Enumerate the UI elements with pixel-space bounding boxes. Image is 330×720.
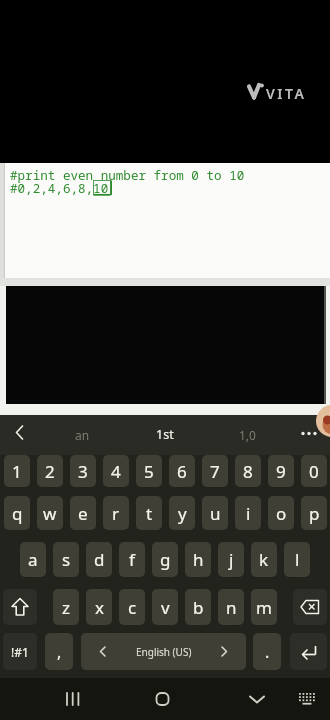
button[interactable]: !#1 — [3, 633, 37, 670]
button[interactable]: m — [251, 589, 277, 625]
staticText: 0 — [309, 460, 319, 483]
staticText: p — [309, 502, 320, 525]
staticText: 1 — [12, 460, 22, 483]
button[interactable]: s — [53, 542, 79, 577]
button[interactable]: . — [253, 633, 281, 670]
button[interactable]: y — [169, 496, 195, 530]
button[interactable]: i — [235, 496, 261, 530]
staticText: d — [94, 548, 105, 571]
staticText: 2 — [45, 460, 55, 483]
staticText: c — [128, 596, 137, 619]
button[interactable]: o — [268, 496, 294, 530]
button[interactable]: w — [37, 496, 63, 530]
staticText: 3 — [78, 460, 88, 483]
button[interactable]: d — [86, 542, 112, 577]
button[interactable]: g — [152, 542, 178, 577]
button[interactable]: 6 — [169, 455, 195, 487]
button[interactable]: 5 — [136, 455, 162, 487]
button[interactable] — [247, 690, 267, 708]
button[interactable]: English (US) — [81, 633, 246, 670]
staticText: #print even number from 0 to 10 — [10, 167, 245, 184]
button[interactable] — [293, 589, 327, 625]
button[interactable]: 4 — [103, 455, 129, 487]
button[interactable]: q — [4, 496, 30, 530]
button[interactable]: z — [53, 589, 79, 625]
staticText: z — [62, 596, 70, 619]
staticText: w — [43, 502, 57, 525]
button[interactable]: t — [136, 496, 162, 530]
staticText: 4 — [111, 460, 121, 483]
staticText: f — [129, 548, 135, 571]
staticText: n — [226, 596, 237, 619]
staticText: !#1 — [11, 644, 29, 660]
staticText: e — [78, 502, 88, 525]
staticText: 9 — [276, 460, 286, 483]
staticText: k — [259, 548, 269, 571]
button[interactable]: 7 — [202, 455, 228, 487]
staticText: 7 — [210, 460, 220, 483]
staticText: i — [246, 502, 251, 525]
staticText: l — [295, 548, 300, 571]
button[interactable]: 2 — [37, 455, 63, 487]
button[interactable]: e — [70, 496, 96, 530]
staticText: 8 — [243, 460, 253, 483]
staticText: q — [12, 502, 23, 525]
button[interactable]: x — [86, 589, 112, 625]
staticText: r — [112, 502, 120, 525]
staticText: y — [178, 502, 187, 525]
staticText: h — [193, 548, 204, 571]
staticText: g — [160, 548, 171, 571]
button[interactable]: a — [20, 542, 46, 577]
button[interactable] — [298, 423, 320, 445]
button[interactable]: k — [251, 542, 277, 577]
button[interactable]: 8 — [235, 455, 261, 487]
staticText: j — [229, 548, 234, 571]
staticText: b — [193, 596, 204, 619]
button[interactable]: , — [45, 633, 73, 670]
button[interactable]: an — [55, 415, 110, 454]
button[interactable] — [64, 690, 82, 708]
button[interactable]: p — [301, 496, 327, 530]
button[interactable]: v — [152, 589, 178, 625]
staticText: x — [95, 596, 104, 619]
staticText: VITA — [266, 84, 307, 103]
staticText: an — [75, 427, 90, 443]
button[interactable] — [12, 422, 28, 448]
button[interactable]: f — [119, 542, 145, 577]
button[interactable]: b — [185, 589, 211, 625]
staticText: , — [57, 641, 62, 663]
staticText: v — [161, 596, 170, 619]
button[interactable]: 1,0 — [220, 415, 275, 454]
button[interactable]: j — [218, 542, 244, 577]
staticText: o — [276, 502, 287, 525]
button[interactable] — [297, 690, 317, 708]
staticText: t — [146, 502, 153, 525]
button[interactable]: 0 — [301, 455, 327, 487]
button[interactable]: 1st — [135, 415, 195, 454]
button[interactable]: r — [103, 496, 129, 530]
staticText: 1st — [156, 426, 174, 443]
button[interactable] — [3, 589, 37, 625]
button[interactable]: n — [218, 589, 244, 625]
button[interactable]: 1 — [4, 455, 30, 487]
button[interactable]: 9 — [268, 455, 294, 487]
staticText: a — [28, 548, 38, 571]
button[interactable] — [290, 633, 327, 670]
button[interactable]: 3 — [70, 455, 96, 487]
button[interactable]: c — [119, 589, 145, 625]
staticText: 5 — [144, 460, 154, 483]
staticText: s — [62, 548, 71, 571]
staticText: m — [256, 596, 272, 619]
button[interactable]: l — [284, 542, 310, 577]
staticText: u — [210, 502, 221, 525]
staticText: #0,2,4,6,8,10 — [10, 180, 109, 197]
button[interactable] — [154, 690, 172, 708]
button[interactable]: u — [202, 496, 228, 530]
staticText: . — [265, 641, 270, 663]
button[interactable]: h — [185, 542, 211, 577]
staticText: English (US) — [136, 645, 192, 659]
staticText: 6 — [177, 460, 187, 483]
staticText: 1,0 — [239, 427, 256, 443]
